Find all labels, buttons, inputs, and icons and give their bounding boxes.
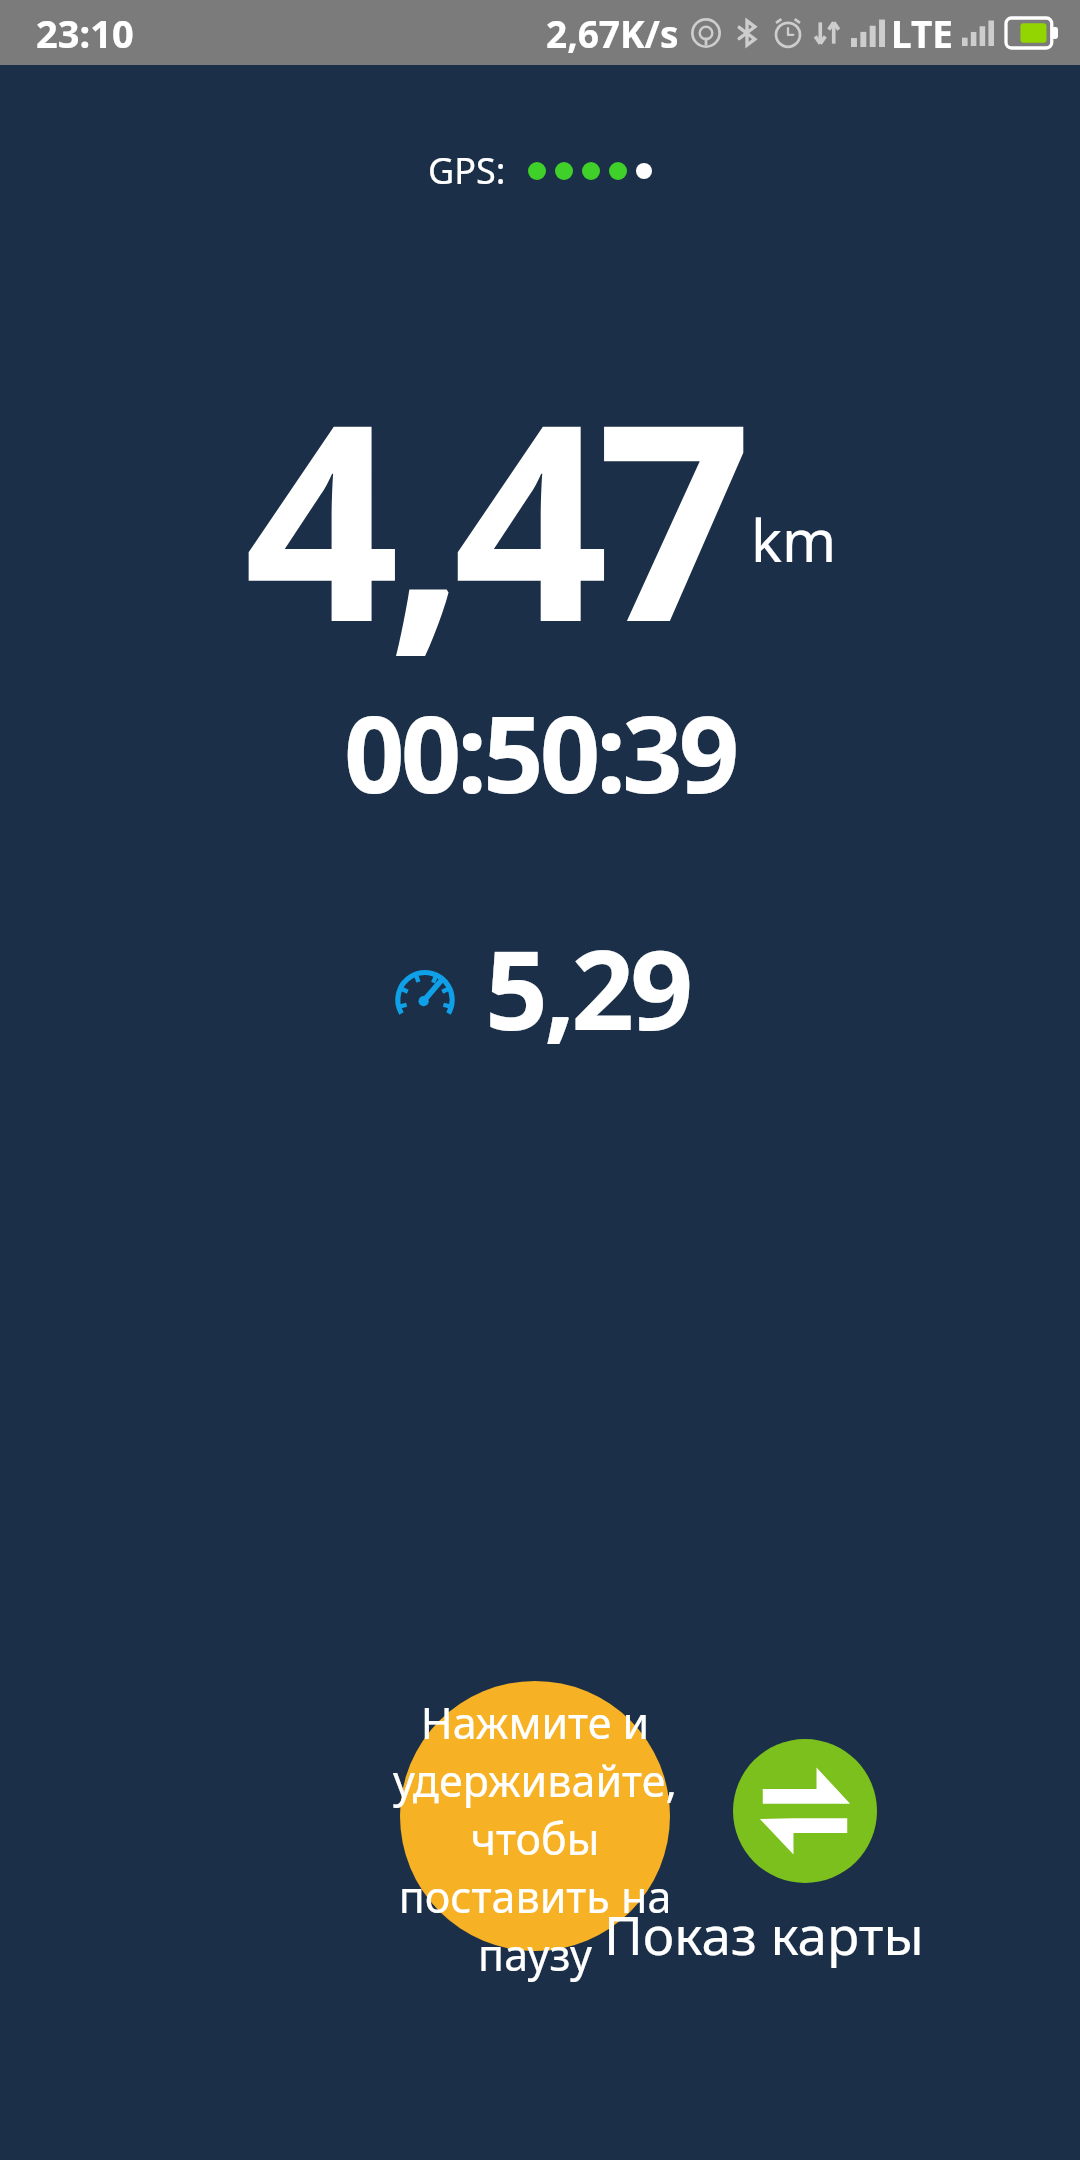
button[interactable]: Переключить показатели [733, 1739, 877, 1883]
staticText: 4,47 [244, 330, 741, 700]
button[interactable]: Нажмите и удерживайте, чтобы поставить н… [400, 1681, 670, 1951]
staticText: 23:10 [36, 7, 134, 59]
staticText: GPS: [428, 146, 506, 195]
staticText: LTE [891, 8, 954, 58]
button[interactable]: Показ карты [604, 1898, 924, 1970]
staticText: 5,29 [485, 912, 690, 1062]
staticText: 00:50:39 [344, 680, 736, 824]
staticText: 2,67K/s [546, 8, 679, 58]
staticText: Нажмите и удерживайте, чтобы поставить н… [372, 1693, 698, 1983]
staticText: km [751, 500, 837, 579]
staticText: Показ карты [604, 1898, 924, 1970]
